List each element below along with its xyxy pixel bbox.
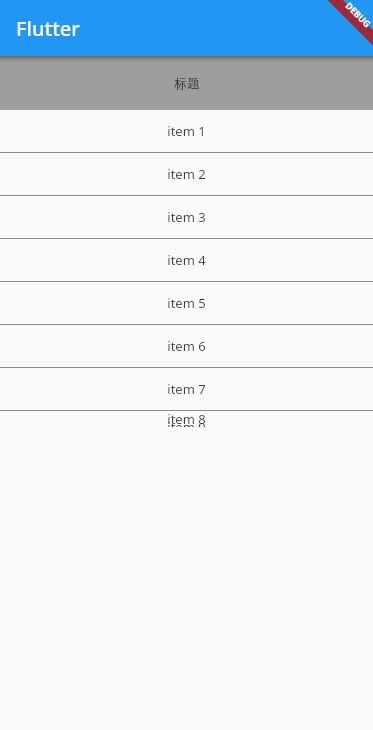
staticText: Flutter: [16, 15, 80, 42]
button[interactable]: item 8: [0, 411, 373, 427]
button[interactable]: item 7: [0, 368, 373, 411]
button[interactable]: item 1: [0, 110, 373, 153]
button[interactable]: item 4: [0, 239, 373, 282]
staticText: 标题: [174, 75, 200, 91]
button[interactable]: item 6: [0, 325, 373, 368]
other: Debug banner: [325, 0, 373, 48]
button[interactable]: item 5: [0, 282, 373, 325]
button[interactable]: item 2: [0, 153, 373, 196]
staticText: item 6: [167, 337, 206, 355]
staticText: item 5: [167, 294, 206, 312]
button[interactable]: item 3: [0, 196, 373, 239]
staticText: item 4: [167, 251, 206, 269]
staticText: item 8: [167, 410, 206, 427]
staticText: item 2: [167, 165, 206, 183]
staticText: item 1: [167, 122, 206, 140]
staticText: item 7: [167, 380, 206, 398]
staticText: item 9: [167, 418, 206, 427]
staticText: item 3: [167, 208, 206, 226]
